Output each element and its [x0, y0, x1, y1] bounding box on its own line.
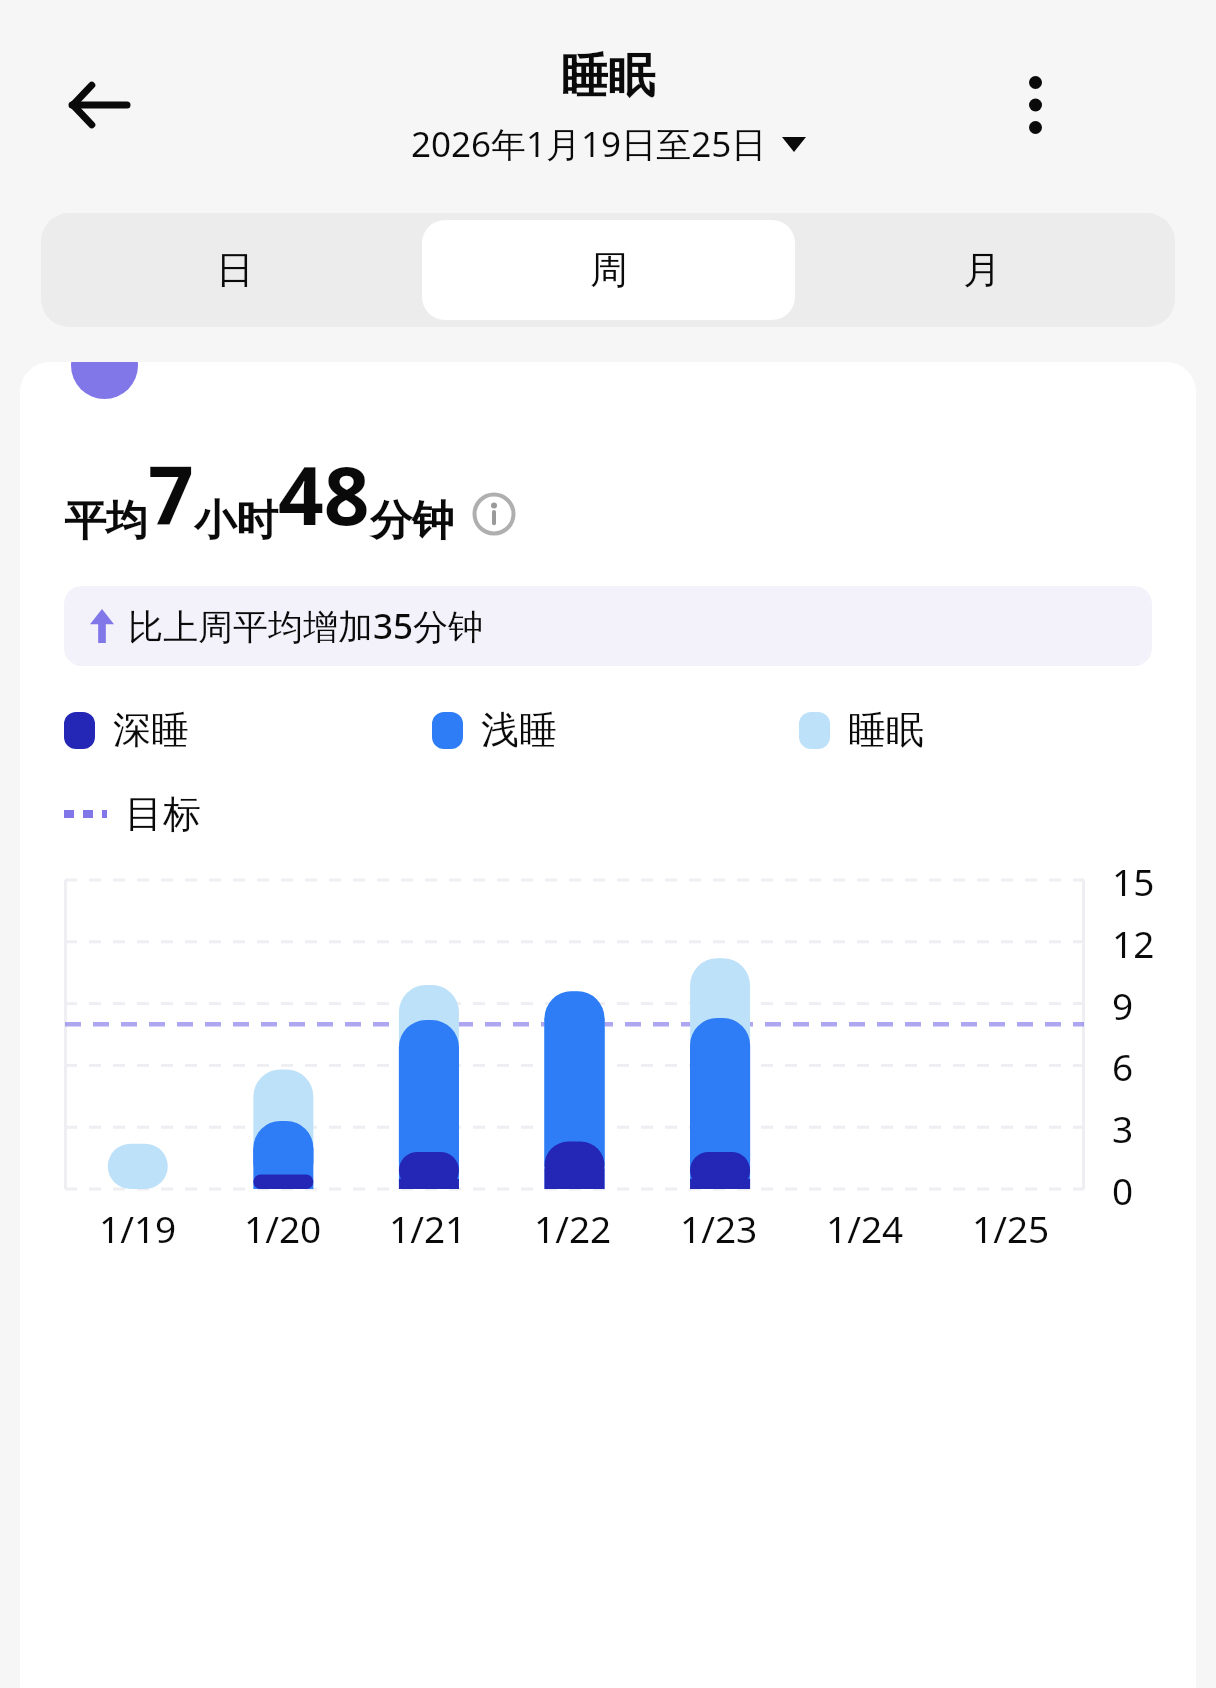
button[interactable]: 深睡	[64, 706, 432, 754]
staticText: 日	[216, 246, 254, 294]
staticText: 1/22	[534, 1203, 612, 1253]
button[interactable]: 周	[422, 220, 795, 320]
button[interactable]: 返回	[50, 56, 148, 154]
staticText: 睡眠	[561, 47, 655, 106]
staticText: 比上周平均增加35分钟	[128, 602, 484, 650]
staticText: 1/19	[99, 1203, 177, 1253]
staticText: 3	[1112, 1103, 1134, 1153]
button[interactable]: 目标	[64, 790, 201, 838]
staticText: 月	[963, 246, 1001, 294]
button[interactable]: 更多选项	[986, 56, 1084, 154]
staticText: 目标	[125, 790, 201, 838]
staticText: 1/25	[972, 1203, 1050, 1253]
staticText: 48	[278, 439, 370, 548]
button[interactable]: 日	[48, 220, 422, 320]
button[interactable]: 浅睡	[432, 706, 799, 754]
button[interactable]: 月	[795, 220, 1168, 320]
staticText: 15	[1112, 856, 1155, 906]
staticText: 1/20	[244, 1203, 322, 1253]
staticText: 9	[1112, 980, 1134, 1030]
staticText: 浅睡	[481, 706, 557, 754]
button[interactable]: 2026年1月19日至25日	[403, 116, 814, 172]
staticText: 深睡	[113, 706, 189, 754]
staticText: 7	[148, 439, 194, 548]
staticText: 小时	[194, 495, 278, 548]
button[interactable]: 睡眠	[799, 706, 1166, 754]
staticText: 分钟	[370, 495, 454, 548]
button[interactable]: 说明	[466, 486, 522, 542]
staticText: 1/21	[389, 1203, 467, 1253]
staticText: 平均	[64, 495, 148, 548]
staticText: 1/24	[826, 1203, 904, 1253]
staticText: 6	[1112, 1041, 1134, 1091]
staticText: 睡眠	[848, 706, 924, 754]
staticText: 周	[590, 246, 628, 294]
staticText: 12	[1112, 918, 1155, 968]
staticText: 2026年1月19日至25日	[411, 120, 767, 168]
staticText: 0	[1112, 1165, 1134, 1215]
staticText: 1/23	[680, 1203, 758, 1253]
